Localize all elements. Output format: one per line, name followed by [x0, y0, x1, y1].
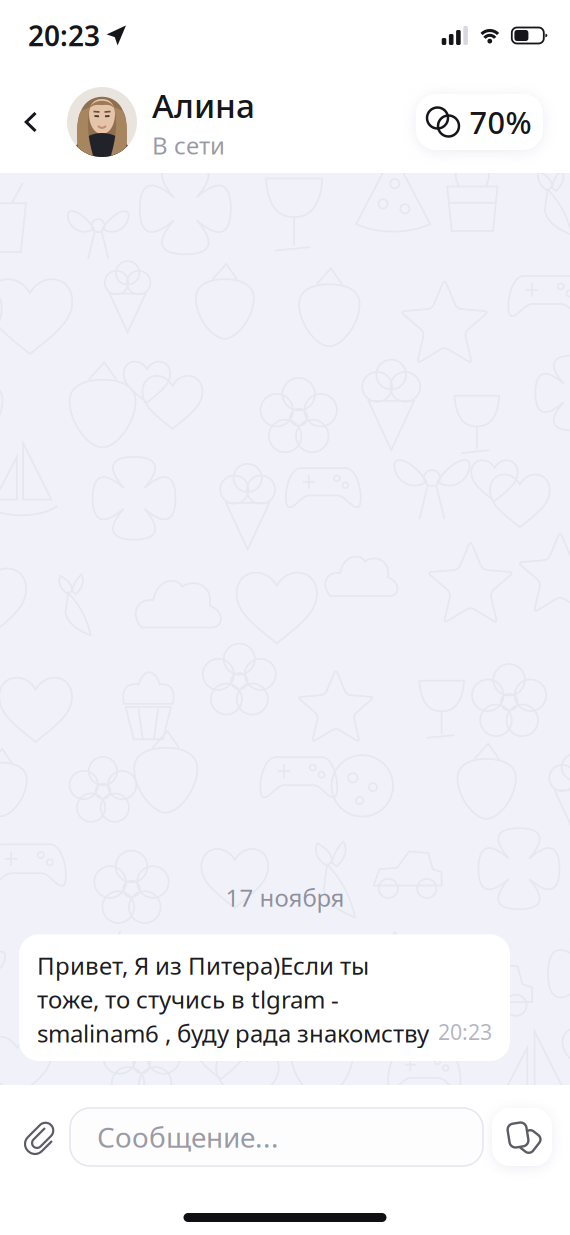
button[interactable]: 70% — [416, 94, 543, 150]
staticText: В сети — [152, 129, 225, 161]
button[interactable]: Back — [9, 92, 67, 152]
button[interactable]: Сообщение... — [70, 1108, 483, 1166]
staticText: 20:23 — [438, 1018, 492, 1046]
staticText: Привет, Я из Питера)Если ты — [37, 949, 369, 981]
staticText: тоже, то стучись в tlgram - — [37, 983, 339, 1015]
staticText: Сообщение... — [97, 1118, 279, 1156]
button[interactable]: Attach — [8, 1106, 70, 1168]
staticText: smalinam6 , буду рада знакомству — [37, 1017, 429, 1049]
staticText: 20:23 — [28, 17, 100, 54]
button[interactable]: Алина — [67, 83, 255, 161]
staticText: 70% — [469, 102, 531, 142]
staticText: Алина — [152, 83, 255, 127]
staticText: 17 ноября — [225, 881, 344, 913]
button[interactable]: Stickers — [492, 1108, 552, 1166]
